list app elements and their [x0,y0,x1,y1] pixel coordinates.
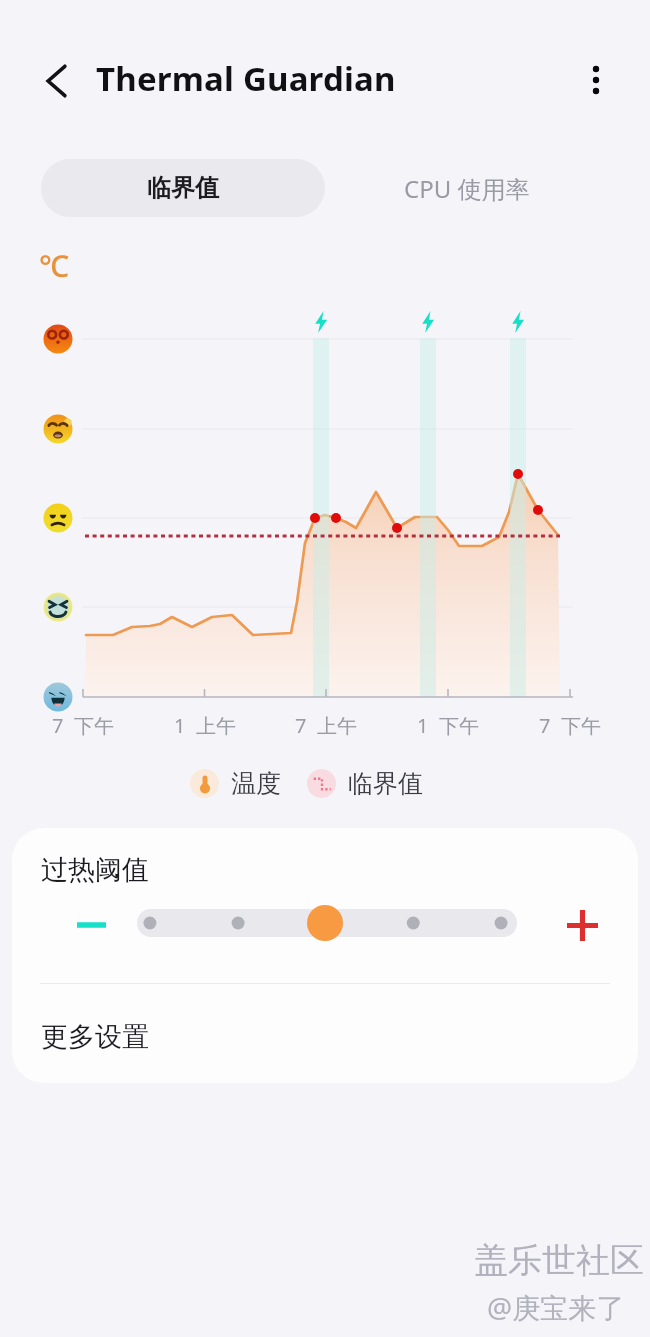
button[interactable]: 温度 [190,768,281,799]
button[interactable]: 临界值 [41,159,325,217]
staticText: 1 下午 [393,712,503,739]
staticText: 更多设置 [41,1020,149,1054]
staticText: 1 上午 [150,712,260,739]
staticText: 临界值 [147,173,219,203]
staticText: 7 下午 [28,712,138,739]
button[interactable]: Back [28,53,84,109]
staticText: 盖乐世社区 [474,1239,644,1282]
staticText: Thermal Guardian [96,56,396,101]
staticText: @庚宝来了 [487,1288,625,1326]
staticText: CPU 使用率 [404,172,530,205]
button[interactable]: Decrease [62,896,120,954]
button[interactable]: Increase [553,896,611,954]
staticText: 7 下午 [515,712,625,739]
button[interactable]: CPU 使用率 [325,159,609,217]
staticText: ℃ [39,245,69,286]
button[interactable]: 更多设置 [12,991,638,1083]
button[interactable]: More options [568,52,624,108]
staticText: 过热阈值 [41,853,149,887]
staticText: 7 上午 [271,712,381,739]
button[interactable]: Threshold level 3 [307,905,343,941]
button[interactable]: 临界值 [307,768,423,799]
staticText: 临界值 [348,768,423,799]
staticText: 温度 [231,768,281,799]
button[interactable]: Overheat threshold slider [137,909,517,937]
